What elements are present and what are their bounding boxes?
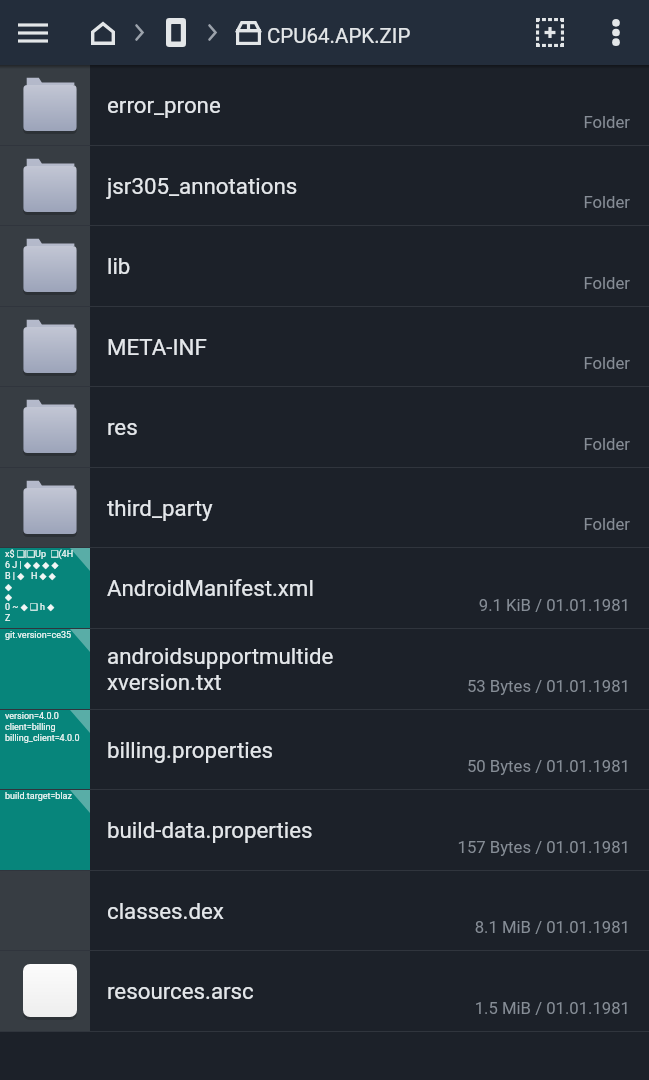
staticText: META-INF: [107, 334, 339, 360]
staticText: 6 J | ◆ ◆ ◆ ◆: [5, 560, 59, 571]
button[interactable]: Menu: [5, 0, 61, 65]
button[interactable]: x$ ❑|❑Up ❑(4H: [0, 548, 649, 628]
staticText: version=4.0.0: [5, 711, 59, 722]
staticText: resources.arsc: [107, 978, 339, 1004]
button[interactable]: git.version=ce35: [0, 629, 649, 709]
button[interactable]: third_party: [0, 468, 649, 547]
staticText: Folder: [583, 274, 630, 294]
staticText: ◆: [5, 592, 12, 602]
button[interactable]: CPU64.APK.ZIP: [236, 0, 411, 65]
staticText: billing_client=4.0.0: [5, 733, 80, 744]
staticText: AndroidManifest.xml: [107, 575, 339, 601]
staticText: classes.dex: [107, 898, 339, 924]
staticText: CPU64.APK.ZIP: [267, 24, 411, 48]
button[interactable]: resources.arsc: [0, 951, 649, 1031]
button[interactable]: Home: [81, 0, 125, 65]
button[interactable]: Select all: [522, 0, 578, 65]
button[interactable]: lib: [0, 226, 649, 306]
staticText: git.version=ce35: [5, 630, 72, 641]
staticText: Folder: [583, 113, 630, 133]
staticText: 9.1 KiB / 01.01.1981: [478, 596, 630, 616]
staticText: res: [107, 414, 339, 440]
staticText: 1.5 MiB / 01.01.1981: [474, 999, 630, 1019]
staticText: build.target=blaz: [5, 791, 72, 802]
staticText: error_prone: [107, 92, 339, 118]
button[interactable]: Device: [154, 0, 198, 65]
staticText: build-data.properties: [107, 817, 339, 843]
button[interactable]: version=4.0.0: [0, 710, 649, 789]
staticText: B | ◆ H ◆ ◆: [5, 571, 56, 582]
staticText: Z: [5, 613, 11, 624]
staticText: jsr305_annotations: [107, 173, 339, 199]
staticText: lib: [107, 253, 339, 279]
staticText: third_party: [107, 495, 339, 521]
button[interactable]: classes.dex: [0, 871, 649, 950]
button[interactable]: res: [0, 387, 649, 467]
staticText: Folder: [583, 515, 630, 535]
staticText: billing.properties: [107, 737, 339, 763]
staticText: 8.1 MiB / 01.01.1981: [474, 918, 630, 938]
staticText: client=billing: [5, 722, 56, 733]
staticText: ◆: [5, 582, 12, 592]
staticText: 157 Bytes / 01.01.1981: [457, 838, 630, 858]
staticText: Folder: [583, 435, 630, 455]
staticText: Folder: [583, 354, 630, 374]
staticText: Folder: [583, 193, 630, 213]
button[interactable]: error_prone: [0, 65, 649, 145]
staticText: 53 Bytes / 01.01.1981: [466, 677, 630, 697]
staticText: 50 Bytes / 01.01.1981: [466, 757, 630, 777]
staticText: x$ ❑|❑Up ❑(4H: [5, 549, 74, 560]
staticText: 0 ~ ◆ ❑ h ◆: [5, 602, 55, 613]
button[interactable]: More options: [588, 0, 644, 65]
staticText: androidsupportmultidexversion.txt: [107, 643, 339, 695]
button[interactable]: META-INF: [0, 307, 649, 386]
button[interactable]: jsr305_annotations: [0, 146, 649, 225]
button[interactable]: build.target=blaz: [0, 790, 649, 870]
